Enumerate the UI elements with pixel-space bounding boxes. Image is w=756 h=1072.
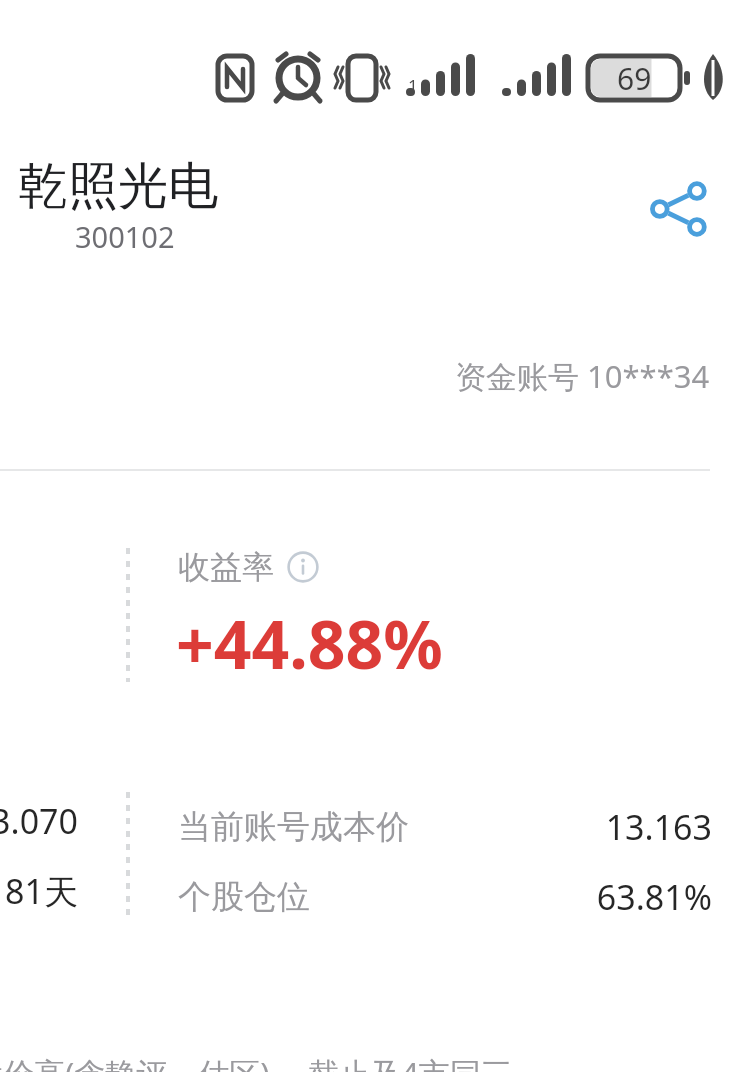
staticText: 当前账号成本价 [178,806,409,848]
staticText: 63.81% [596,874,712,920]
staticText: 乾照光电 [18,155,218,218]
staticText: 13.163 [605,804,712,850]
staticText: 1 [408,74,418,97]
button[interactable]: 资金账号 10***34 [0,345,756,407]
button[interactable]: Share [636,166,722,252]
other: Info [286,550,320,584]
staticText: 个股仓位 [178,876,310,918]
staticText: +44.88% [176,598,443,688]
staticText: 13.070 [0,798,78,844]
staticText: 181天 [0,868,78,914]
button[interactable]: 当前账号成本价 [178,798,712,856]
button[interactable]: 乾照光电 [18,155,438,265]
staticText: 截止及4市同三 [308,1052,512,1072]
button[interactable]: 收益率 [178,538,320,596]
staticText: 资金账号 10***34 [455,355,710,397]
staticText: 300102 [75,217,175,256]
staticText: 收益率 [178,547,274,587]
button[interactable]: 个股仓位 [178,868,712,926]
staticText: 股价高(含静评、估区) [0,1052,270,1072]
staticText: 69 [617,58,652,99]
